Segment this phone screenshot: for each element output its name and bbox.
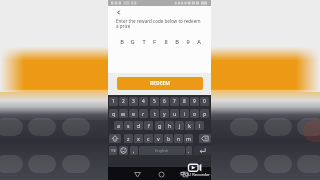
button[interactable]: !?# [109, 146, 117, 155]
staticText: g [158, 122, 162, 129]
staticText: u [173, 110, 177, 117]
staticText: B [120, 38, 124, 46]
staticText: r [142, 110, 145, 117]
staticText: t [154, 110, 156, 117]
button[interactable]: . [186, 146, 192, 155]
button[interactable]: g [155, 121, 164, 130]
staticText: 8 [164, 38, 168, 46]
staticText: z [127, 135, 130, 142]
button[interactable]: q [109, 109, 118, 118]
button[interactable]: b [164, 134, 173, 143]
staticText: q [112, 110, 116, 117]
staticText: 9 [186, 38, 190, 46]
staticText: f [148, 122, 150, 129]
staticText: b [167, 135, 171, 142]
button[interactable]: i [180, 109, 189, 118]
staticText: T [142, 38, 146, 46]
button[interactable]: Back [132, 169, 142, 179]
button[interactable]: B [118, 38, 125, 46]
button[interactable]: Space [139, 146, 185, 155]
button[interactable]: v [154, 134, 163, 143]
button[interactable]: G [129, 38, 136, 46]
staticText: !?# [111, 148, 116, 153]
staticText: 0 [203, 98, 206, 105]
button[interactable]: a [114, 121, 123, 130]
staticText: n [177, 135, 181, 142]
staticText: 8 [183, 98, 186, 105]
button[interactable]: 5 [150, 97, 159, 106]
staticText: j [179, 122, 181, 129]
button[interactable]: e [129, 109, 138, 118]
staticText: m [186, 135, 191, 142]
button[interactable]: x [134, 134, 143, 143]
button[interactable]: 3 [129, 97, 138, 106]
staticText: k [188, 122, 191, 129]
button[interactable]: l [195, 121, 204, 130]
staticText: 9 [193, 98, 196, 105]
button[interactable]: 2 [119, 97, 128, 106]
staticText: y [163, 110, 166, 117]
staticText: 4 [142, 98, 145, 105]
button[interactable]: p [200, 109, 209, 118]
button[interactable]: c [144, 134, 153, 143]
staticText: 5 [153, 98, 156, 105]
button[interactable]: 9 [184, 38, 191, 46]
button[interactable]: A [195, 38, 202, 46]
button[interactable]: Emoji [119, 146, 128, 155]
button[interactable]: , [130, 146, 138, 155]
button[interactable]: t [150, 109, 159, 118]
staticText: . [188, 147, 190, 154]
button[interactable]: 8 [162, 38, 169, 46]
button[interactable]: z [124, 134, 133, 143]
button[interactable]: u [170, 109, 179, 118]
staticText: 1 [112, 98, 115, 105]
button[interactable]: Enter [194, 146, 211, 155]
staticText: h [168, 122, 172, 129]
button[interactable]: n [174, 134, 183, 143]
button[interactable]: k [185, 121, 194, 130]
button[interactable]: 0 [200, 97, 209, 106]
button[interactable]: F [151, 38, 158, 46]
button[interactable]: y [160, 109, 169, 118]
staticText: e [132, 110, 135, 117]
button[interactable]: T [140, 38, 147, 46]
button[interactable]: 6 [160, 97, 169, 106]
staticText: l [199, 122, 201, 129]
button[interactable]: d [134, 121, 143, 130]
button[interactable]: s [124, 121, 133, 130]
staticText: Enter the reward code below to redeem a … [116, 18, 202, 30]
staticText: i [184, 110, 186, 117]
staticText: 3 [132, 98, 135, 105]
staticText: DU Recorder [185, 172, 211, 178]
staticText: w [121, 110, 126, 117]
button[interactable]: r [139, 109, 148, 118]
staticText: , [133, 147, 135, 154]
staticText: F [153, 38, 156, 46]
staticText: x [137, 135, 140, 142]
button[interactable]: 7 [170, 97, 179, 106]
button[interactable]: 9 [190, 97, 199, 106]
button[interactable]: o [190, 109, 199, 118]
button[interactable]: Shift [109, 134, 121, 143]
staticText: 7 [173, 98, 176, 105]
button[interactable]: 1 [109, 97, 118, 106]
staticText: s [127, 122, 130, 129]
button[interactable]: h [165, 121, 174, 130]
button[interactable]: Recents [180, 169, 190, 179]
button[interactable]: w [119, 109, 128, 118]
button[interactable]: REDEEM [117, 77, 203, 90]
staticText: d [137, 122, 141, 129]
button[interactable]: Home [156, 169, 166, 179]
staticText: 6 [163, 98, 166, 105]
staticText: 2 [122, 98, 125, 105]
staticText: a [117, 122, 120, 129]
button[interactable]: 8 [180, 97, 189, 106]
button[interactable]: 4 [139, 97, 148, 106]
staticText: A [197, 38, 201, 46]
button[interactable]: f [144, 121, 153, 130]
button[interactable]: Backspace [199, 134, 211, 143]
button[interactable]: Back [111, 7, 125, 18]
button[interactable]: B [173, 38, 180, 46]
button[interactable]: j [175, 121, 184, 130]
button[interactable]: m [184, 134, 193, 143]
